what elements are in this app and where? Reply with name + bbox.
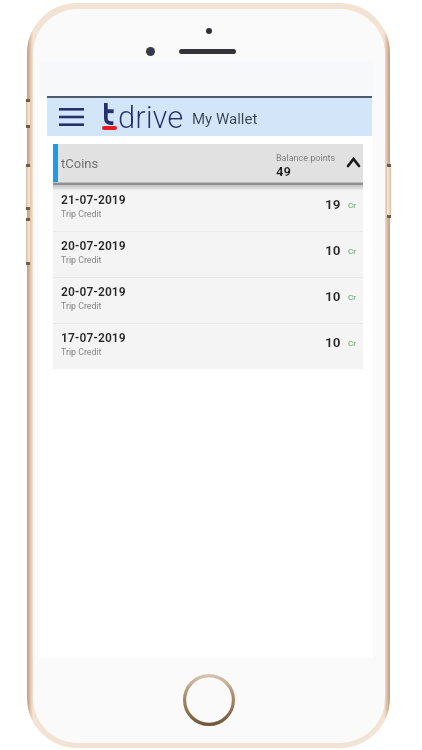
staticText: My Wallet xyxy=(192,110,258,128)
button[interactable]: 21-07-2019 xyxy=(53,186,363,231)
staticText: 10 xyxy=(325,242,341,258)
staticText: Cr xyxy=(348,201,356,210)
button[interactable]: 20-07-2019 xyxy=(53,232,363,277)
staticText: Trip Credit xyxy=(61,347,102,357)
staticText: Balance points xyxy=(276,153,336,164)
staticText: Trip Credit xyxy=(61,301,102,311)
staticText: Cr xyxy=(348,247,356,256)
staticText: Cr xyxy=(348,293,356,302)
staticText: drive xyxy=(118,99,184,135)
staticText: Cr xyxy=(348,339,356,348)
button[interactable]: Menu xyxy=(53,101,90,133)
staticText: 49 xyxy=(276,164,291,179)
staticText: 10 xyxy=(325,334,341,350)
staticText: 19 xyxy=(325,196,341,212)
button[interactable]: Collapse xyxy=(343,144,363,182)
button[interactable]: tCoins xyxy=(53,144,363,182)
staticText: 21-07-2019 xyxy=(61,193,126,207)
staticText: 10 xyxy=(325,288,341,304)
staticText: tCoins xyxy=(61,156,99,171)
button[interactable]: 20-07-2019 xyxy=(53,278,363,323)
staticText: 17-07-2019 xyxy=(61,331,126,345)
staticText: 20-07-2019 xyxy=(61,239,126,253)
staticText: Trip Credit xyxy=(61,255,102,265)
staticText: Trip Credit xyxy=(61,209,102,219)
staticText: 20-07-2019 xyxy=(61,285,126,299)
button[interactable]: 17-07-2019 xyxy=(53,324,363,369)
